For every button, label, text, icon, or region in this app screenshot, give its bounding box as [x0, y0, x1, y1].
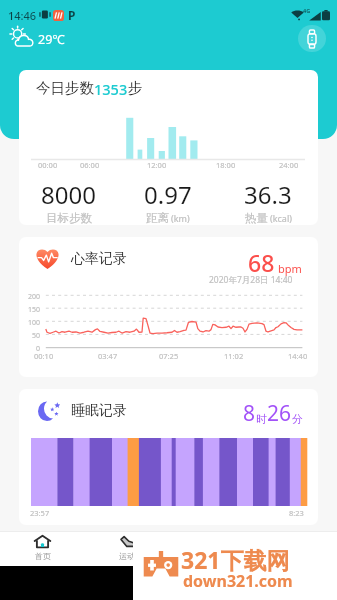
- staticText: 今日步数: [36, 79, 94, 97]
- staticText: (km): [171, 212, 190, 224]
- staticText: 100: [28, 318, 41, 328]
- button[interactable]: 运动: [85, 532, 169, 566]
- button[interactable]: 我的: [253, 532, 337, 566]
- staticText: 分: [292, 412, 303, 426]
- staticText: 26: [267, 399, 292, 428]
- staticText: 时: [256, 412, 267, 426]
- staticText: 24:00: [279, 160, 299, 170]
- staticText: down321.com: [183, 570, 293, 592]
- staticText: 2020年7月28日 14:40: [209, 274, 293, 286]
- staticText: 我的: [287, 551, 303, 561]
- staticText: 0: [36, 344, 41, 354]
- button[interactable]: 健康: [169, 532, 253, 566]
- staticText: P: [68, 7, 76, 23]
- staticText: 距离: [146, 211, 169, 225]
- staticText: 150: [28, 305, 41, 315]
- staticText: 0.97: [144, 178, 192, 211]
- staticText: 11:02: [224, 351, 244, 361]
- staticText: 200: [28, 292, 41, 302]
- staticText: 热量: [245, 211, 268, 225]
- staticText: 29℃: [38, 31, 65, 48]
- staticText: 14:46: [8, 8, 37, 23]
- staticText: 心率记录: [71, 250, 127, 268]
- staticText: 36.3: [244, 178, 292, 211]
- staticText: 06:00: [80, 160, 100, 170]
- staticText: 03:47: [98, 351, 118, 361]
- staticText: 目标步数: [46, 211, 92, 225]
- staticText: 00:00: [38, 160, 58, 170]
- staticText: 12:00: [147, 160, 167, 170]
- staticText: 321下载网: [181, 544, 290, 575]
- staticText: 50: [32, 331, 41, 341]
- staticText: 8000: [41, 178, 96, 211]
- staticText: 睡眠记录: [71, 402, 127, 420]
- staticText: 4G: [303, 7, 311, 14]
- button[interactable]: 首页: [0, 532, 85, 566]
- staticText: 8:23: [289, 508, 304, 518]
- staticText: 18:00: [216, 160, 236, 170]
- staticText: 运动: [119, 551, 135, 561]
- staticText: 1353: [94, 79, 128, 99]
- staticText: bpm: [278, 261, 302, 276]
- staticText: 68: [248, 247, 275, 278]
- button[interactable]: My device: [298, 25, 326, 52]
- staticText: 07:25: [159, 351, 179, 361]
- staticText: 步: [128, 79, 143, 97]
- staticText: 健康: [203, 551, 219, 561]
- staticText: 00:10: [34, 351, 54, 361]
- staticText: 首页: [35, 551, 51, 561]
- staticText: 8: [243, 399, 256, 428]
- staticText: (kcal): [270, 212, 292, 224]
- staticText: 23:57: [30, 508, 50, 518]
- staticText: 14:40: [288, 351, 308, 361]
